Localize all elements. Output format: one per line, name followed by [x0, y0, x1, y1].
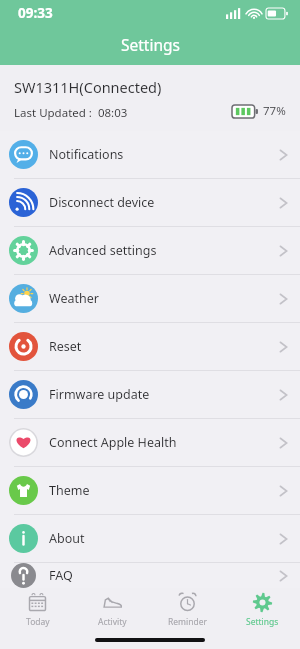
staticText: Advanced settings — [49, 242, 279, 259]
button[interactable]: FAQ — [0, 563, 300, 588]
button[interactable]: About — [0, 515, 300, 562]
button[interactable]: Firmware update — [0, 371, 300, 418]
button[interactable]: Reset — [0, 323, 300, 370]
staticText: About — [49, 530, 279, 547]
button[interactable]: Activity — [75, 588, 150, 632]
button[interactable]: Settings — [225, 588, 300, 632]
button[interactable]: Advanced settings — [0, 227, 300, 274]
staticText: SW1311H(Connected) — [14, 77, 162, 97]
staticText: 09:33 — [18, 4, 53, 22]
staticText: Disconnect device — [49, 194, 279, 211]
button[interactable]: Weather — [0, 275, 300, 322]
button[interactable]: Connect Apple Health — [0, 419, 300, 466]
staticText: Settings — [121, 34, 180, 55]
staticText: Weather — [49, 290, 279, 307]
staticText: Theme — [49, 482, 279, 499]
staticText: FAQ — [49, 567, 279, 584]
button[interactable]: Disconnect device — [0, 179, 300, 226]
button[interactable]: Reminder — [150, 588, 225, 632]
staticText: Reminder — [168, 616, 208, 628]
staticText: 77% — [263, 103, 286, 119]
staticText: Connect Apple Health — [49, 434, 279, 451]
button[interactable]: Theme — [0, 467, 300, 514]
staticText: Reset — [49, 338, 279, 355]
button[interactable]: Today — [0, 588, 75, 632]
button[interactable]: Notifications — [0, 131, 300, 178]
staticText: Firmware update — [49, 386, 279, 403]
staticText: Activity — [98, 616, 127, 628]
staticText: Settings — [246, 616, 279, 628]
staticText: Today — [26, 616, 50, 628]
staticText: Last Updated : 08:03 — [14, 105, 128, 121]
staticText: Notifications — [49, 146, 279, 163]
